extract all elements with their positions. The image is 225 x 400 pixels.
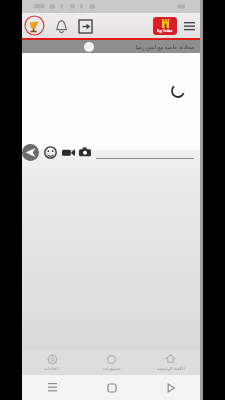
staticText: منشورات xyxy=(103,366,121,371)
button[interactable]: Notifications xyxy=(51,16,71,36)
button[interactable] xyxy=(96,145,194,159)
staticText: اعدادات xyxy=(44,366,60,371)
button[interactable]: Menu xyxy=(181,17,197,35)
button[interactable]: Camera xyxy=(78,145,92,159)
staticText: الكعبه الرئيسيه xyxy=(157,365,185,371)
button[interactable]: Home xyxy=(82,375,141,400)
button[interactable]: Logout xyxy=(75,16,95,36)
button[interactable]: الكعبه الرئيسيه xyxy=(141,350,200,375)
button[interactable]: Send xyxy=(22,144,39,161)
button[interactable]: Video xyxy=(61,145,75,159)
button[interactable]: Recents xyxy=(22,375,82,400)
button[interactable]: Eg Tube xyxy=(153,17,177,35)
button[interactable]: Back xyxy=(141,375,200,400)
button[interactable]: Profile xyxy=(24,15,45,36)
button[interactable]: اعدادات xyxy=(22,350,82,375)
button[interactable]: منشورات xyxy=(82,350,141,375)
staticText: Eg Tube xyxy=(157,28,173,33)
button[interactable]: Emoji xyxy=(44,146,57,159)
staticText: محادثة خاصة مع انس رضا xyxy=(135,43,194,50)
